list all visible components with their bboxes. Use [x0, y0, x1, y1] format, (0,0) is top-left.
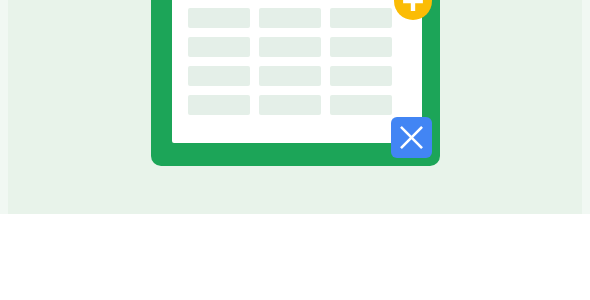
button[interactable]: Add — [394, 0, 432, 20]
button[interactable] — [151, 0, 440, 166]
button[interactable]: Close — [391, 117, 432, 158]
